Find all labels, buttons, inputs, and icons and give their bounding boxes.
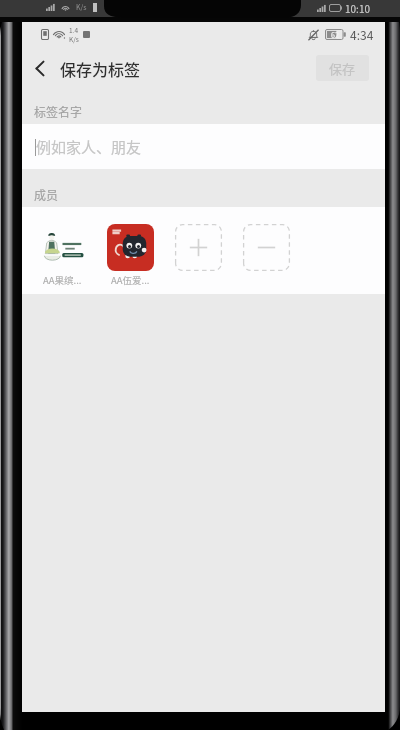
staticText: 保存	[329, 59, 356, 78]
staticText: K/s	[76, 2, 87, 12]
staticText: K/s	[69, 34, 79, 43]
button[interactable]: 保存	[316, 55, 369, 81]
button[interactable]: 例如家人、朋友	[22, 124, 385, 169]
button[interactable]: AA伍爱...	[105, 224, 156, 287]
button[interactable]: 返回	[22, 46, 58, 90]
staticText: 例如家人、朋友	[36, 136, 142, 158]
staticText: 标签名字	[34, 103, 83, 120]
staticText: AA伍爱...	[111, 273, 150, 287]
staticText: 62	[331, 30, 339, 40]
staticText: 1.4	[69, 25, 79, 34]
staticText: 成员	[34, 186, 59, 203]
staticText: 10:10	[345, 1, 370, 15]
staticText: 保存为标签	[60, 57, 141, 80]
button[interactable]: AA果缤...	[37, 224, 88, 287]
staticText: AA果缤...	[43, 273, 82, 287]
button[interactable]: 添加成员	[175, 224, 222, 271]
staticText: 4:34	[350, 26, 374, 43]
button[interactable]: 移除成员	[243, 224, 290, 271]
